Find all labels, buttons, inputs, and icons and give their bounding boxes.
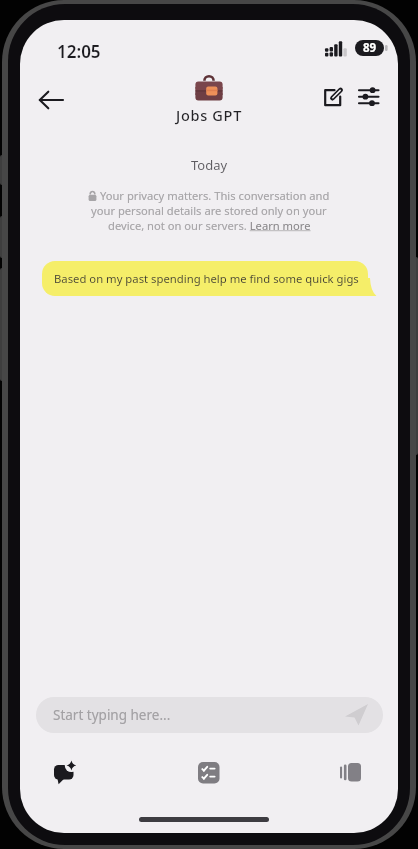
- button[interactable]: [314, 80, 348, 114]
- button[interactable]: [28, 82, 68, 118]
- staticText: Start typing here...: [53, 706, 171, 724]
- staticText: Today: [20, 156, 398, 174]
- staticText: 89: [363, 40, 377, 56]
- button[interactable]: Start typing here...: [36, 697, 383, 733]
- staticText: Your privacy matters. This conversation …: [97, 188, 330, 203]
- staticText: Jobs GPT: [20, 105, 398, 125]
- staticText: device, not on our servers. Learn more: [108, 218, 311, 233]
- staticText: your personal details are stored only on…: [91, 203, 327, 218]
- button[interactable]: [327, 749, 375, 797]
- button[interactable]: [41, 749, 89, 797]
- staticText: 12:05: [57, 40, 101, 63]
- staticText: Based on my past spending help me find s…: [54, 271, 359, 286]
- button[interactable]: [185, 749, 233, 797]
- button[interactable]: [347, 78, 381, 112]
